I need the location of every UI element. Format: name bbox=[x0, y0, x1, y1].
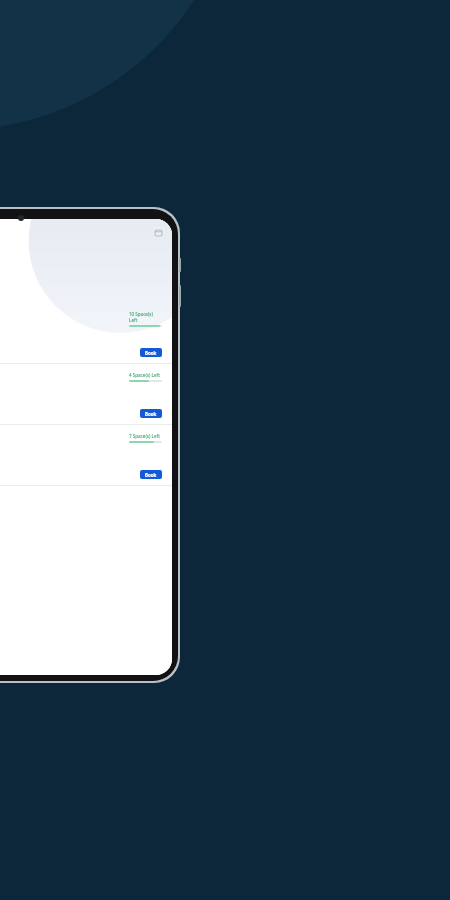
staticText: Book bbox=[145, 411, 157, 417]
button[interactable]: Calendar bbox=[153, 227, 164, 238]
staticText: 10 Space(s) Left bbox=[129, 311, 153, 323]
button[interactable]: 07:00 – 08:00 bbox=[0, 301, 172, 363]
button[interactable]: 09:00 – 10:00 bbox=[0, 364, 172, 424]
staticText: 4 Space(s) Left bbox=[129, 372, 160, 378]
staticText: Book bbox=[145, 472, 157, 478]
staticText: 7 Space(s) Left bbox=[129, 433, 160, 439]
button[interactable]: Book bbox=[140, 409, 162, 418]
button[interactable]: Book bbox=[140, 470, 162, 479]
button[interactable]: Book bbox=[140, 348, 162, 357]
button[interactable]: 11:00 – 12:00 bbox=[0, 425, 172, 485]
staticText: Book a session bbox=[0, 229, 153, 236]
staticText: Book bbox=[145, 350, 157, 356]
